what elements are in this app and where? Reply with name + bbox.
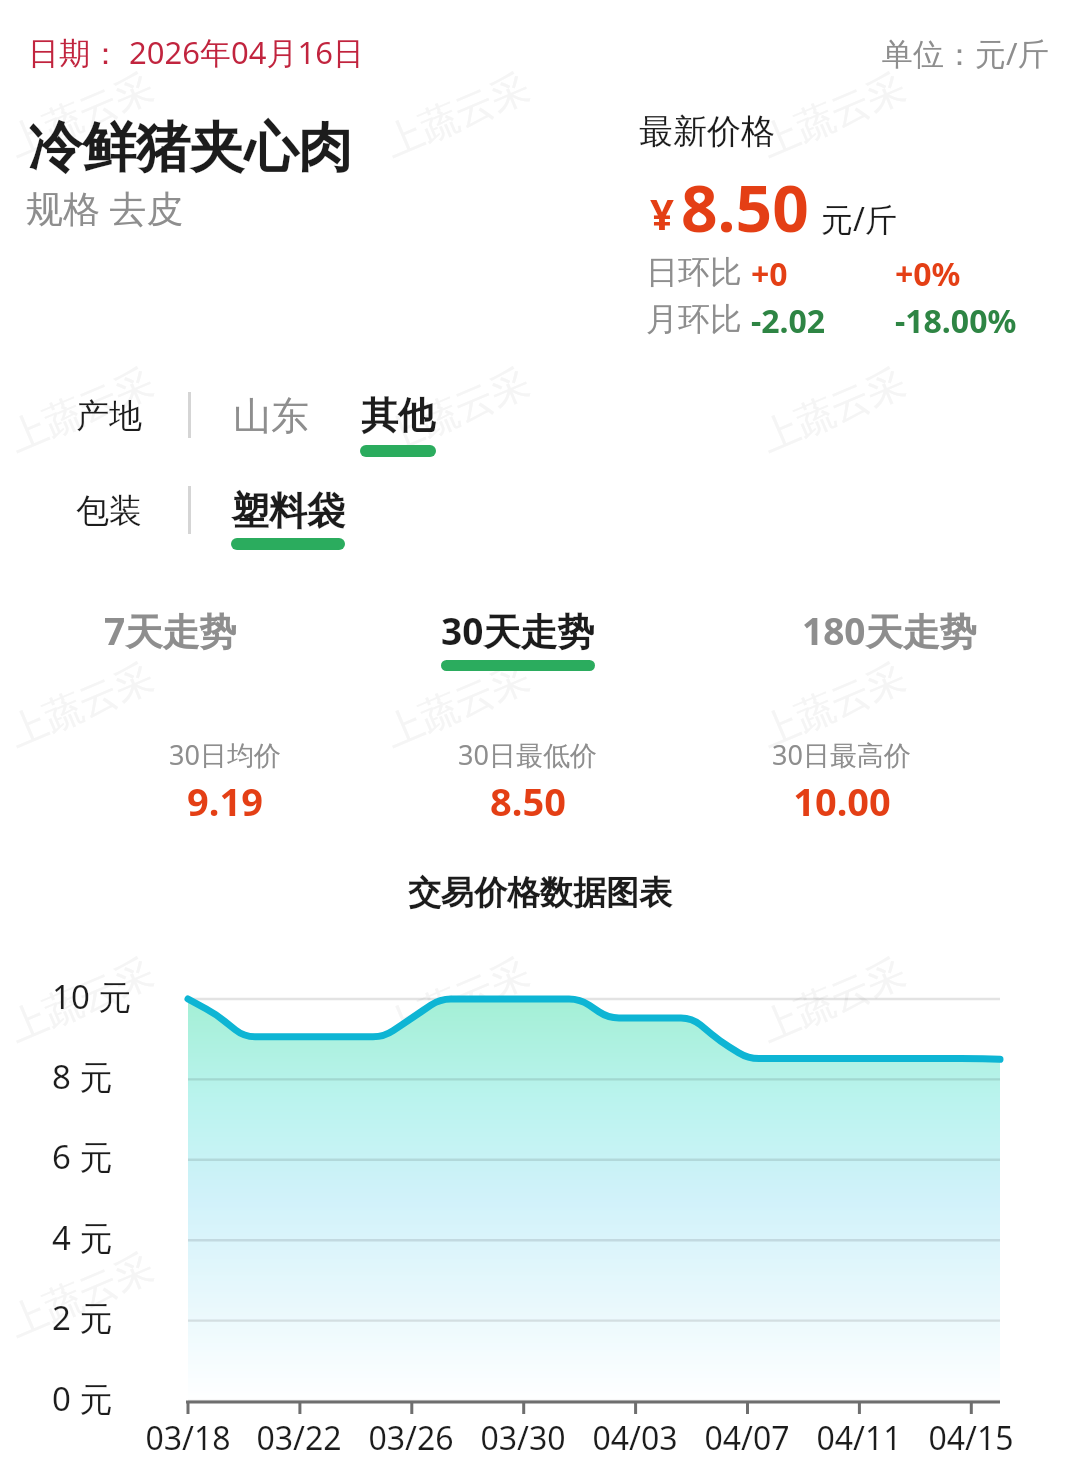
staticText: 交易价格数据图表 [408,872,672,914]
staticText: 元/斤 [821,197,897,241]
staticText: 单位：元/斤 [882,32,1049,74]
staticText: 03/18 [145,1416,231,1457]
button[interactable]: 其他 [350,382,446,467]
staticText: 30日最高价 [772,736,911,773]
staticText: 8.50 [490,775,566,827]
button[interactable]: 7天走势 [84,585,257,676]
staticText: 2 元 [52,1295,113,1340]
staticText: 180天走势 [802,605,977,656]
staticText: 04/03 [592,1416,678,1457]
staticText: 上蔬云采 [754,653,912,757]
staticText: 8 元 [52,1054,113,1099]
staticText: 04/11 [816,1416,902,1457]
staticText: 上蔬云采 [378,653,536,757]
staticText: -18.00% [895,299,1017,343]
staticText: 04/15 [928,1416,1014,1457]
staticText: 规格 去皮 [26,182,184,233]
staticText: 上蔬云采 [2,948,160,1052]
staticText: 山东 [233,392,309,440]
staticText: 上蔬云采 [2,63,160,167]
staticText: 上蔬云采 [754,63,912,167]
staticText: 上蔬云采 [754,948,912,1052]
button[interactable]: 产地 [66,385,152,447]
staticText: -2.02 [751,299,826,343]
staticText: 7天走势 [104,605,237,656]
staticText: 月环比 [646,299,742,339]
button[interactable]: 包装 [66,480,152,542]
staticText: 03/30 [480,1416,566,1457]
staticText: 上蔬云采 [754,1243,912,1347]
staticText: 日环比 [646,252,742,292]
staticText: +0 [751,252,788,296]
staticText: 6 元 [52,1134,113,1179]
staticText: 10 元 [52,974,132,1019]
staticText: 03/26 [368,1416,454,1457]
staticText: 04/07 [704,1416,790,1457]
staticText: 上蔬云采 [2,358,160,462]
staticText: 8.50 [681,164,809,251]
staticText: +0% [895,252,961,296]
staticText: 0 元 [52,1376,113,1421]
staticText: 30日最低价 [458,736,597,773]
staticText: 4 元 [52,1215,113,1260]
staticText: 上蔬云采 [378,948,536,1052]
staticText: 30日均价 [169,736,281,773]
staticText: 03/22 [256,1416,342,1457]
staticText: 上蔬云采 [2,1243,160,1347]
staticText: 9.19 [187,775,263,827]
staticText: 产地 [76,395,142,437]
staticText: 塑料袋 [231,487,345,535]
button[interactable]: 山东 [223,382,319,450]
staticText: 10.00 [793,775,891,827]
staticText: 包装 [76,490,142,532]
button[interactable]: 30天走势 [421,585,615,691]
button[interactable]: 180天走势 [782,585,997,676]
staticText: 30天走势 [441,605,595,656]
staticText: 其他 [361,392,435,439]
staticText: 冷鲜猪夹心肉 [28,114,352,182]
staticText: 日期： 2026年04月16日 [28,31,364,73]
staticText: 上蔬云采 [378,1243,536,1347]
staticText: 最新价格 [639,110,775,153]
staticText: ¥ [650,185,675,242]
button[interactable]: 塑料袋 [221,477,355,560]
staticText: 上蔬云采 [378,358,536,462]
